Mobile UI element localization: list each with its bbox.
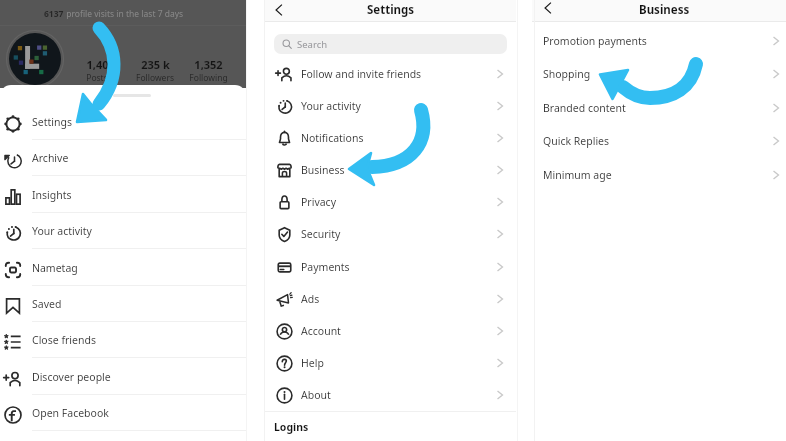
staticText: Archive	[32, 151, 69, 165]
button[interactable]: Notifications	[265, 122, 516, 154]
staticText: Discover people	[32, 370, 111, 384]
staticText: Privacy	[301, 195, 337, 209]
button[interactable]: Help	[265, 347, 516, 379]
staticText: Account	[301, 324, 341, 338]
button[interactable]: Back	[272, 3, 286, 17]
button[interactable]: Account	[265, 315, 516, 347]
button[interactable]: Saved	[0, 286, 246, 322]
staticText: Logins	[274, 420, 309, 434]
staticText: Close friends	[32, 333, 96, 347]
button[interactable]: Branded content	[532, 91, 786, 124]
button[interactable]: Archive	[0, 140, 246, 176]
staticText: Search	[297, 38, 328, 51]
staticText: Open Facebook	[32, 406, 109, 420]
staticText: 1,352	[194, 57, 223, 72]
button[interactable]: Insights	[0, 177, 246, 213]
staticText: Business	[301, 163, 345, 177]
button[interactable]: Settings	[0, 104, 246, 140]
staticText: Help	[301, 356, 324, 370]
staticText: Ads	[301, 292, 320, 306]
staticText: Quick Replies	[543, 134, 610, 148]
button[interactable]: Nametag	[0, 250, 246, 286]
staticText: Posts	[86, 72, 108, 84]
staticText: Your activity	[301, 99, 361, 113]
staticText: Follow and invite friends	[301, 67, 422, 81]
button[interactable]: Privacy	[265, 186, 516, 218]
staticText: Your activity	[32, 224, 92, 238]
staticText: 1,40	[86, 57, 109, 72]
button[interactable]: Discover people	[0, 359, 246, 395]
button[interactable]: About	[265, 379, 516, 411]
staticText: Business	[639, 2, 690, 18]
button[interactable]: Shopping	[532, 57, 786, 90]
button[interactable]: Search	[274, 34, 507, 54]
staticText: profile visits in the last 7 days	[64, 8, 184, 20]
staticText: Notifications	[301, 131, 364, 145]
staticText: Payments	[301, 260, 350, 274]
button[interactable]: Your activity	[0, 213, 246, 249]
button[interactable]: Security	[265, 218, 516, 250]
staticText: Settings	[32, 115, 72, 129]
staticText: Settings	[367, 2, 415, 18]
staticText: Security	[301, 227, 341, 241]
button[interactable]: Ads	[265, 283, 516, 315]
button[interactable]: Follow and invite friends	[265, 58, 516, 90]
staticText: Nametag	[32, 261, 78, 275]
button[interactable]: Quick Replies	[532, 124, 786, 157]
button[interactable]: Payments	[265, 251, 516, 283]
button[interactable]: Promotion payments	[532, 24, 786, 57]
button[interactable]: Back	[541, 1, 555, 15]
staticText: 235 k	[141, 57, 170, 72]
staticText: Saved	[32, 297, 62, 311]
staticText: Minimum age	[543, 168, 612, 182]
staticText: Branded content	[543, 101, 626, 115]
button[interactable]: Close friends	[0, 322, 246, 358]
staticText: About	[301, 388, 331, 402]
button[interactable]: Your activity	[265, 90, 516, 122]
button[interactable]: Minimum age	[532, 158, 786, 191]
staticText: Insights	[32, 188, 72, 202]
button[interactable]: Open Facebook	[0, 395, 246, 431]
staticText: Promotion payments	[543, 34, 647, 48]
staticText: Following	[189, 72, 228, 84]
staticText: Followers	[136, 72, 174, 84]
button[interactable]: Logins	[265, 412, 516, 441]
staticText: Shopping	[543, 67, 591, 81]
button[interactable]: Business	[265, 154, 516, 186]
staticText: 6137	[44, 8, 64, 20]
